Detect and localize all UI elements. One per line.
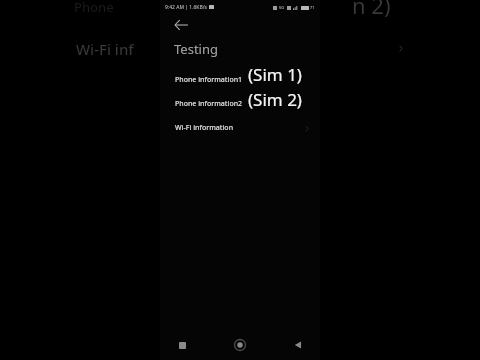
staticText: Phone information2 (175, 99, 243, 109)
staticText: 71 (310, 5, 315, 10)
button[interactable]: Navigate up (170, 14, 192, 36)
button[interactable]: Wi-Fi information (160, 116, 320, 140)
staticText: Wi-Fi information (175, 123, 234, 133)
staticText: Testing (174, 40, 218, 58)
button[interactable]: Recent apps (171, 334, 193, 356)
staticText: 9:42 AM | 1.6KB/s (165, 4, 207, 11)
button[interactable]: Back (287, 334, 309, 356)
staticText: Phone information1 (175, 75, 243, 85)
staticText: Phone (74, 0, 114, 16)
staticText: 5G (279, 5, 285, 10)
staticText: (Sim 2) (248, 88, 302, 111)
button[interactable]: Phone information1 (160, 68, 320, 92)
staticText: n 2) (352, 0, 391, 20)
staticText: (Sim 1) (248, 63, 302, 86)
button[interactable]: Home (229, 334, 251, 356)
staticText: Wi-Fi inf (76, 39, 134, 59)
button[interactable]: Phone information2 (160, 92, 320, 116)
